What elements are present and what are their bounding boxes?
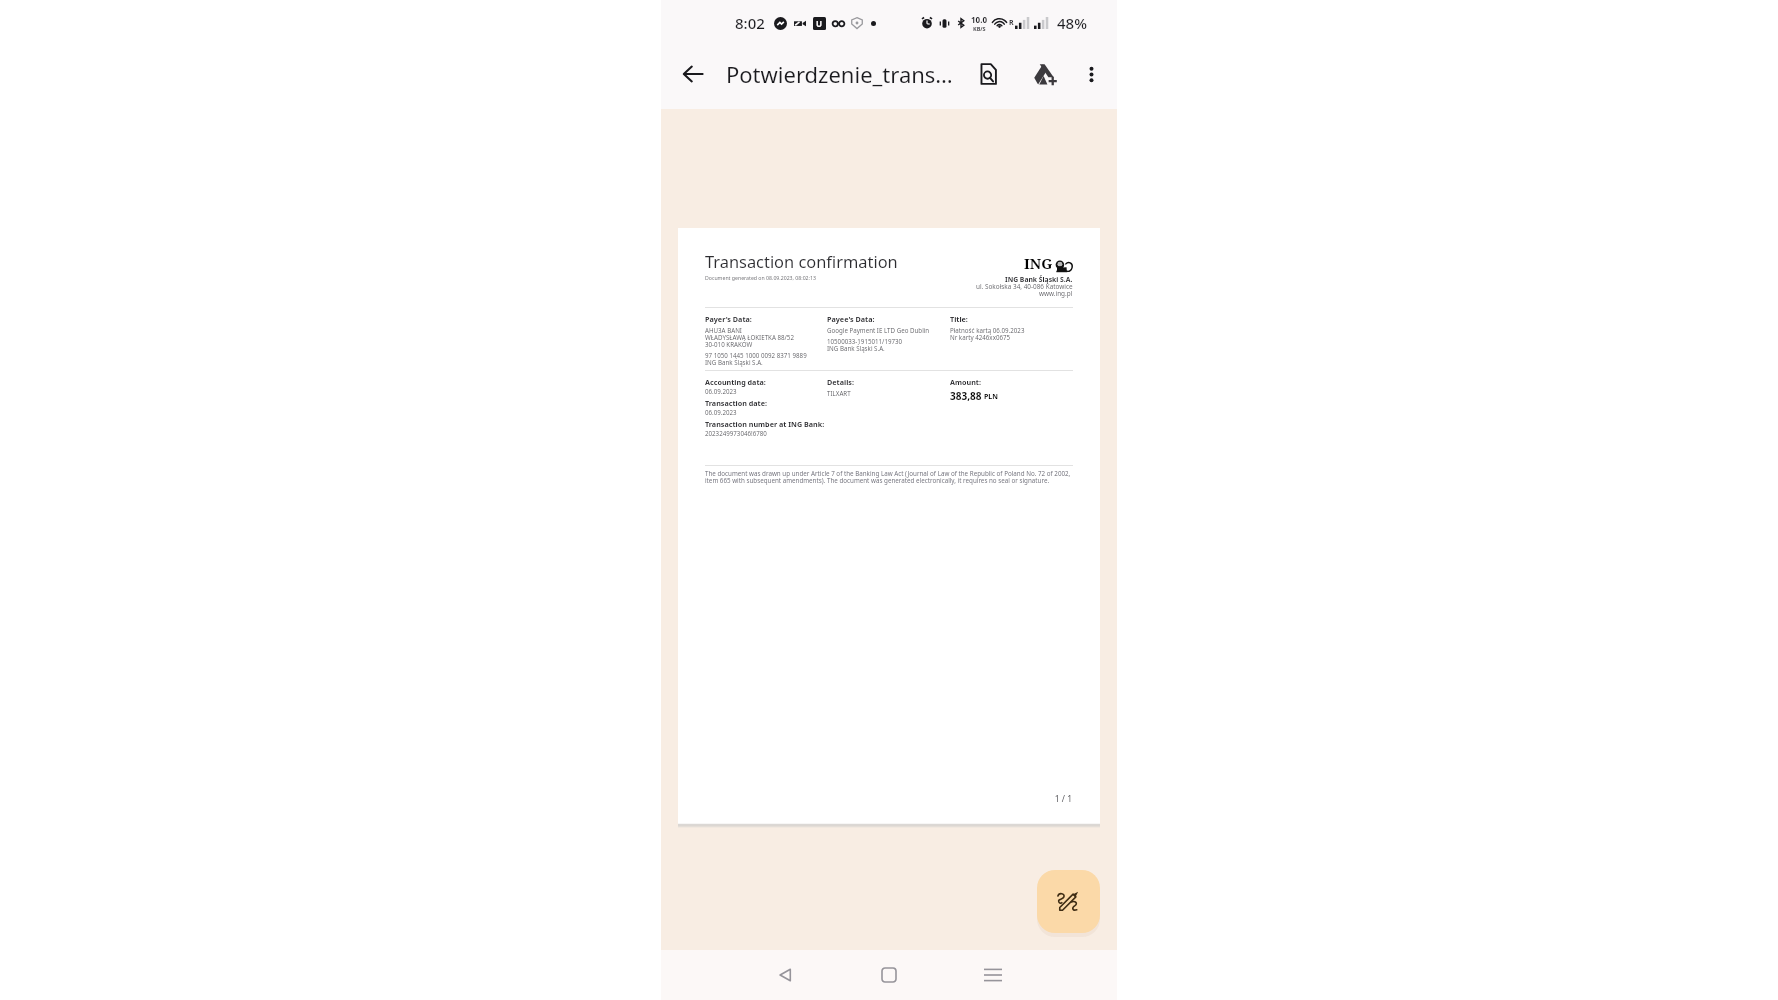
staticText: Amount:	[950, 377, 981, 387]
staticText: 97 1050 1445 1000 0092 8371 9889	[705, 351, 807, 359]
button[interactable]: Back	[671, 52, 715, 96]
staticText: Transaction number at ING Bank:	[705, 419, 825, 429]
staticText: Transaction confirmation	[705, 250, 898, 272]
staticText: WŁADYSŁAWA ŁOKIETKA 88/52	[705, 333, 794, 341]
staticText: AHU3A BANI	[705, 326, 742, 334]
staticText: 383,88	[950, 389, 982, 403]
staticText: www.ing.pl	[1039, 289, 1073, 298]
staticText: 8:02	[735, 13, 765, 33]
staticText: 06.09.2023	[705, 387, 737, 395]
staticText: Płatność kartą 06.09.2023	[950, 326, 1025, 334]
staticText: Accounting data:	[705, 377, 766, 387]
staticText: 10.0	[971, 14, 987, 25]
button[interactable]: Recents	[969, 951, 1017, 999]
staticText: Google Payment IE LTD Geo Dublin	[827, 326, 930, 334]
button[interactable]: Annotate	[1037, 870, 1100, 933]
staticText: Details:	[827, 377, 854, 387]
staticText: KB/S	[973, 25, 986, 32]
staticText: Title:	[950, 314, 968, 324]
staticText: Payee's Data:	[827, 314, 875, 324]
staticText: ING Bank Śląski S.A.	[827, 344, 885, 352]
staticText: Potwierdzenie_trans…	[726, 59, 953, 89]
button[interactable]: Add to Drive	[1022, 53, 1070, 95]
button[interactable]: Home	[865, 951, 913, 999]
button[interactable]: Find in document	[954, 53, 1022, 95]
staticText: The document was drawn up under Article …	[705, 469, 1071, 485]
staticText: 30-010 KRAKÓW	[705, 340, 753, 348]
staticText: 1 / 1	[705, 793, 1072, 805]
staticText: ul. Sokołska 34, 40-086 Katowice	[976, 282, 1073, 291]
staticText: Payer's Data:	[705, 314, 752, 324]
staticText: U	[816, 18, 823, 29]
staticText: PLN	[984, 392, 998, 402]
staticText: ING Bank Śląski S.A.	[1005, 275, 1073, 284]
staticText: 06.09.2023	[705, 408, 737, 416]
button[interactable]: More options	[1070, 53, 1112, 95]
staticText: Document generated on 08.09.2023, 08:02:…	[705, 274, 816, 281]
staticText: R	[1009, 18, 1014, 28]
staticText: 10500033-1915011/19730	[827, 337, 903, 345]
staticText: Nr karty 4246xx0675	[950, 333, 1011, 341]
staticText: TILXART	[827, 389, 851, 397]
staticText: ING	[1024, 253, 1053, 273]
staticText: 48%	[1057, 13, 1087, 33]
staticText: 2023249973046!6780	[705, 429, 767, 437]
button[interactable]: Back	[761, 951, 809, 999]
staticText: Transaction date:	[705, 398, 768, 408]
staticText: ING Bank Śląski S.A.	[705, 358, 763, 366]
